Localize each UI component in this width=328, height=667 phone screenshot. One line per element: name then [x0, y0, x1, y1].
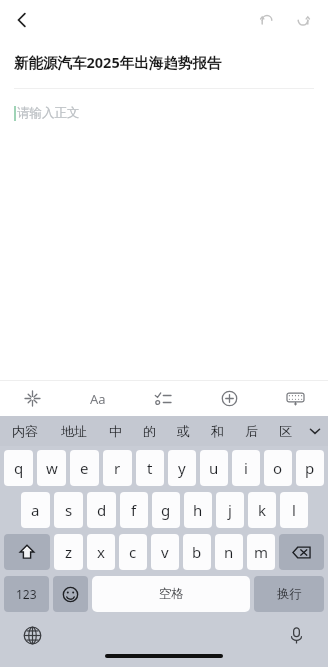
staticText: q	[14, 458, 24, 478]
button[interactable]: Style	[0, 381, 65, 416]
staticText: t	[147, 458, 153, 478]
staticText: p	[305, 458, 315, 478]
button[interactable]: Shift	[4, 534, 50, 570]
staticText: 请输入正文	[17, 105, 80, 121]
staticText: b	[192, 542, 202, 562]
staticText: u	[209, 458, 219, 478]
staticText: l	[292, 500, 296, 520]
staticText: 的	[143, 423, 156, 439]
button[interactable]: u	[200, 450, 228, 486]
button[interactable]: q	[4, 450, 33, 486]
staticText: c	[129, 542, 137, 562]
button[interactable]: s	[54, 492, 83, 528]
staticText: 123	[16, 586, 37, 602]
button[interactable]: 中	[98, 416, 132, 446]
button[interactable]: o	[264, 450, 292, 486]
staticText: i	[244, 458, 248, 478]
button[interactable]: d	[87, 492, 116, 528]
button[interactable]: 和	[200, 416, 234, 446]
button[interactable]: r	[103, 450, 132, 486]
staticText: x	[97, 542, 105, 562]
button[interactable]: Font	[65, 381, 130, 416]
staticText: 中	[109, 423, 122, 439]
button[interactable]: More candidates	[302, 416, 328, 446]
staticText: v	[161, 542, 169, 562]
button[interactable]: w	[37, 450, 66, 486]
button[interactable]: 后	[234, 416, 268, 446]
staticText: 换行	[277, 586, 302, 602]
button[interactable]: b	[183, 534, 211, 570]
button[interactable]: 空格	[92, 576, 250, 612]
staticText: w	[46, 458, 58, 478]
button[interactable]: 或	[166, 416, 200, 446]
button[interactable]: Insert	[196, 381, 262, 416]
button[interactable]: 的	[132, 416, 166, 446]
button[interactable]: z	[54, 534, 83, 570]
button[interactable]: Emoji	[53, 576, 88, 612]
button[interactable]: e	[70, 450, 99, 486]
button[interactable]: x	[87, 534, 115, 570]
staticText: n	[224, 542, 234, 562]
button[interactable]: 换行	[254, 576, 324, 612]
button[interactable]: Keyboard	[262, 381, 328, 416]
staticText: 和	[211, 423, 224, 439]
staticText: 空格	[159, 586, 184, 602]
staticText: 新能源汽车2025年出海趋势报告	[14, 52, 222, 72]
staticText: s	[65, 500, 73, 520]
staticText: f	[131, 500, 137, 520]
staticText: m	[254, 542, 269, 562]
staticText: 内容	[12, 423, 38, 439]
button[interactable]: v	[151, 534, 179, 570]
button[interactable]: Backspace	[279, 534, 324, 570]
staticText: z	[65, 542, 73, 562]
staticText: g	[161, 500, 171, 520]
button[interactable]: a	[21, 492, 50, 528]
staticText: 区	[279, 423, 292, 439]
button[interactable]: f	[120, 492, 148, 528]
button[interactable]: p	[296, 450, 324, 486]
staticText: r	[114, 458, 121, 478]
button[interactable]: n	[215, 534, 243, 570]
staticText: e	[80, 458, 89, 478]
button[interactable]: g	[152, 492, 180, 528]
button[interactable]: Undo	[252, 5, 282, 35]
staticText: 或	[177, 423, 190, 439]
button[interactable]: Redo	[288, 5, 318, 35]
staticText: Aa	[90, 390, 106, 408]
button[interactable]: k	[248, 492, 276, 528]
button[interactable]: Back	[4, 2, 40, 38]
button[interactable]: 地址	[49, 416, 98, 446]
button[interactable]: h	[184, 492, 212, 528]
button[interactable]: 内容	[0, 416, 49, 446]
staticText: d	[97, 500, 107, 520]
button[interactable]: 123	[4, 576, 49, 612]
staticText: h	[193, 500, 203, 520]
button[interactable]: m	[247, 534, 275, 570]
staticText: k	[258, 500, 267, 520]
button[interactable]: l	[280, 492, 308, 528]
staticText: 地址	[61, 423, 87, 439]
staticText: j	[228, 500, 232, 520]
button[interactable]: Change language	[18, 621, 46, 649]
button[interactable]: Checklist	[130, 381, 196, 416]
staticText: o	[273, 458, 283, 478]
button[interactable]: t	[136, 450, 164, 486]
staticText: y	[178, 458, 186, 478]
button[interactable]: y	[168, 450, 196, 486]
button[interactable]: 区	[268, 416, 302, 446]
button[interactable]: i	[232, 450, 260, 486]
button[interactable]: c	[119, 534, 147, 570]
staticText: a	[31, 500, 40, 520]
button[interactable]: Voice input	[282, 621, 310, 649]
button[interactable]: j	[216, 492, 244, 528]
staticText: 后	[245, 423, 258, 439]
